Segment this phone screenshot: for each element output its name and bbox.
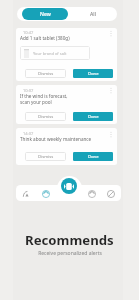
button[interactable]: Dismiss (25, 112, 66, 121)
button[interactable]: History (83, 186, 101, 202)
staticText: Done (88, 114, 99, 120)
staticText: New (40, 11, 51, 18)
staticText: 14:07 (23, 131, 34, 136)
button[interactable]: More options (108, 131, 114, 138)
button[interactable] (16, 85, 117, 124)
button[interactable]: More options (108, 30, 114, 37)
staticText: Dismiss (38, 114, 54, 120)
button[interactable]: More options (108, 87, 114, 94)
button[interactable]: Done (73, 152, 113, 161)
staticText: 10:07 (23, 88, 34, 93)
staticText: Think about weekly maintenance (20, 136, 92, 142)
button[interactable]: Performance (37, 186, 55, 202)
staticText: Dismiss (38, 154, 54, 160)
button[interactable] (16, 28, 117, 81)
button[interactable]: Settings (102, 186, 120, 202)
staticText: Receive personalized alerts (38, 250, 102, 257)
button[interactable]: Done (73, 112, 113, 121)
staticText: 10:47 (23, 30, 34, 35)
button[interactable]: Done (73, 69, 113, 78)
staticText: If the wind is forecast, scan your pool (20, 93, 68, 105)
button[interactable] (16, 128, 117, 165)
staticText: Recommends (25, 231, 114, 249)
button[interactable]: Home (18, 186, 36, 202)
button[interactable]: New (22, 8, 68, 20)
button[interactable]: Dismiss (25, 69, 66, 78)
staticText: Your brand of salt (33, 51, 67, 56)
staticText: Done (88, 154, 99, 160)
staticText: All (90, 11, 96, 18)
staticText: Add 1 salt tablet (380g) (20, 35, 70, 41)
button[interactable]: All (68, 8, 117, 20)
staticText: Done (88, 71, 99, 77)
button[interactable]: Dismiss (25, 152, 66, 161)
button[interactable]: Robot cleaner (61, 178, 77, 194)
staticText: Dismiss (38, 71, 54, 77)
